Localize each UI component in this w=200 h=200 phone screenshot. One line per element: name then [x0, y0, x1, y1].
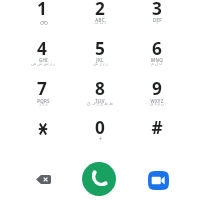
button[interactable]: 7	[14, 80, 71, 120]
button[interactable]: star	[14, 114, 71, 154]
staticText: #	[151, 116, 163, 136]
button[interactable]: 6	[128, 40, 185, 80]
staticText: 9	[152, 77, 162, 97]
staticText: 6	[152, 37, 162, 57]
staticText: ک ل م	[151, 61, 163, 67]
staticText: ط ظ ع غ ف ق	[87, 101, 113, 107]
staticText: +	[99, 135, 102, 142]
staticText: JKL	[96, 57, 104, 63]
staticText: WXYZ	[150, 98, 164, 104]
staticText: ABC	[95, 17, 105, 23]
staticText: ا ب ت	[94, 20, 106, 26]
button[interactable]: pound	[128, 114, 185, 154]
staticText: 7	[37, 77, 47, 97]
staticText: MNO	[151, 57, 163, 63]
staticText: 5	[95, 37, 105, 57]
staticText: ر ز س ش ص	[31, 61, 55, 67]
staticText: 3	[152, 0, 162, 17]
button[interactable]: 2	[71, 0, 128, 40]
staticText: 2	[95, 0, 105, 17]
button[interactable]: Video call	[140, 162, 176, 198]
staticText: GHI	[39, 57, 48, 63]
button[interactable]: 3	[128, 0, 185, 40]
button[interactable]: 1	[14, 0, 71, 40]
staticText: TUV	[95, 98, 105, 104]
button[interactable]: 9	[128, 80, 185, 120]
button[interactable]: 5	[71, 40, 128, 80]
staticText: ر ز ژ	[39, 101, 48, 107]
staticText: ا	[156, 20, 158, 25]
button[interactable]: 4	[14, 40, 71, 80]
button[interactable]: Backspace	[21, 161, 65, 197]
button[interactable]: 8	[71, 80, 128, 120]
staticText: DEF	[153, 17, 162, 23]
button[interactable]: 0	[71, 114, 128, 154]
staticText: 8	[95, 77, 105, 97]
staticText: ن و ه ی	[150, 101, 164, 107]
staticText: 4	[37, 37, 47, 57]
staticText: 1	[37, 0, 47, 17]
staticText: PQRS	[37, 98, 50, 104]
staticText: ر ز ژ س	[93, 61, 108, 67]
staticText: 0	[95, 116, 105, 136]
button[interactable]: Call	[77, 157, 121, 200]
